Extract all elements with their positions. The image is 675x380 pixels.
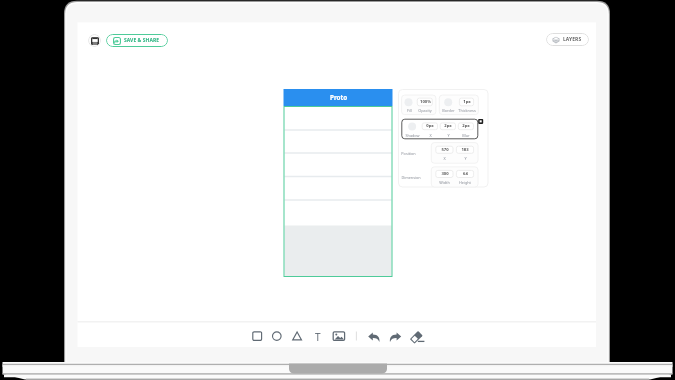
staticText: 2px bbox=[444, 123, 452, 129]
button[interactable]: Erase bbox=[411, 329, 425, 344]
staticText: Y bbox=[447, 133, 450, 138]
staticText: 2px bbox=[462, 123, 470, 129]
staticText: LAYERS bbox=[563, 36, 582, 43]
button[interactable]: Rectangle tool bbox=[251, 329, 265, 344]
staticText: 0px bbox=[426, 123, 434, 129]
button[interactable]: Proto bbox=[284, 89, 393, 106]
button[interactable]: Image tool bbox=[332, 329, 346, 344]
staticText: Thickness bbox=[458, 108, 476, 113]
staticText: Dimension bbox=[401, 175, 421, 180]
staticText: 1px bbox=[463, 99, 471, 105]
staticText: Shadow bbox=[405, 133, 420, 138]
staticText: Y bbox=[464, 156, 467, 161]
button[interactable]: Triangle tool bbox=[291, 329, 305, 344]
button[interactable]: Save file bbox=[88, 34, 101, 47]
button[interactable]: Ellipse tool bbox=[271, 329, 285, 344]
staticText: 300 bbox=[441, 171, 449, 177]
button[interactable]: Redo bbox=[389, 329, 403, 344]
staticText: Position bbox=[401, 151, 416, 156]
staticText: T bbox=[315, 330, 321, 343]
button[interactable]: SAVE & SHARE bbox=[106, 34, 168, 47]
staticText: 64 bbox=[463, 171, 468, 177]
staticText: SAVE & SHARE bbox=[124, 37, 160, 44]
staticText: Border bbox=[442, 108, 455, 113]
button[interactable]: Text tool bbox=[311, 329, 325, 344]
button[interactable]: LAYERS bbox=[546, 33, 589, 46]
button[interactable]: Undo bbox=[367, 329, 381, 344]
staticText: 100% bbox=[420, 99, 431, 105]
staticText: Fill bbox=[407, 108, 412, 113]
staticText: Blur bbox=[462, 133, 470, 138]
staticText: Proto bbox=[330, 93, 348, 102]
staticText: X bbox=[443, 156, 446, 161]
staticText: X bbox=[429, 133, 432, 138]
staticText: Width bbox=[439, 180, 450, 185]
staticText: Height bbox=[459, 180, 471, 185]
staticText: 570 bbox=[441, 147, 449, 153]
staticText: 183 bbox=[461, 147, 469, 153]
staticText: Opacity bbox=[418, 108, 432, 113]
